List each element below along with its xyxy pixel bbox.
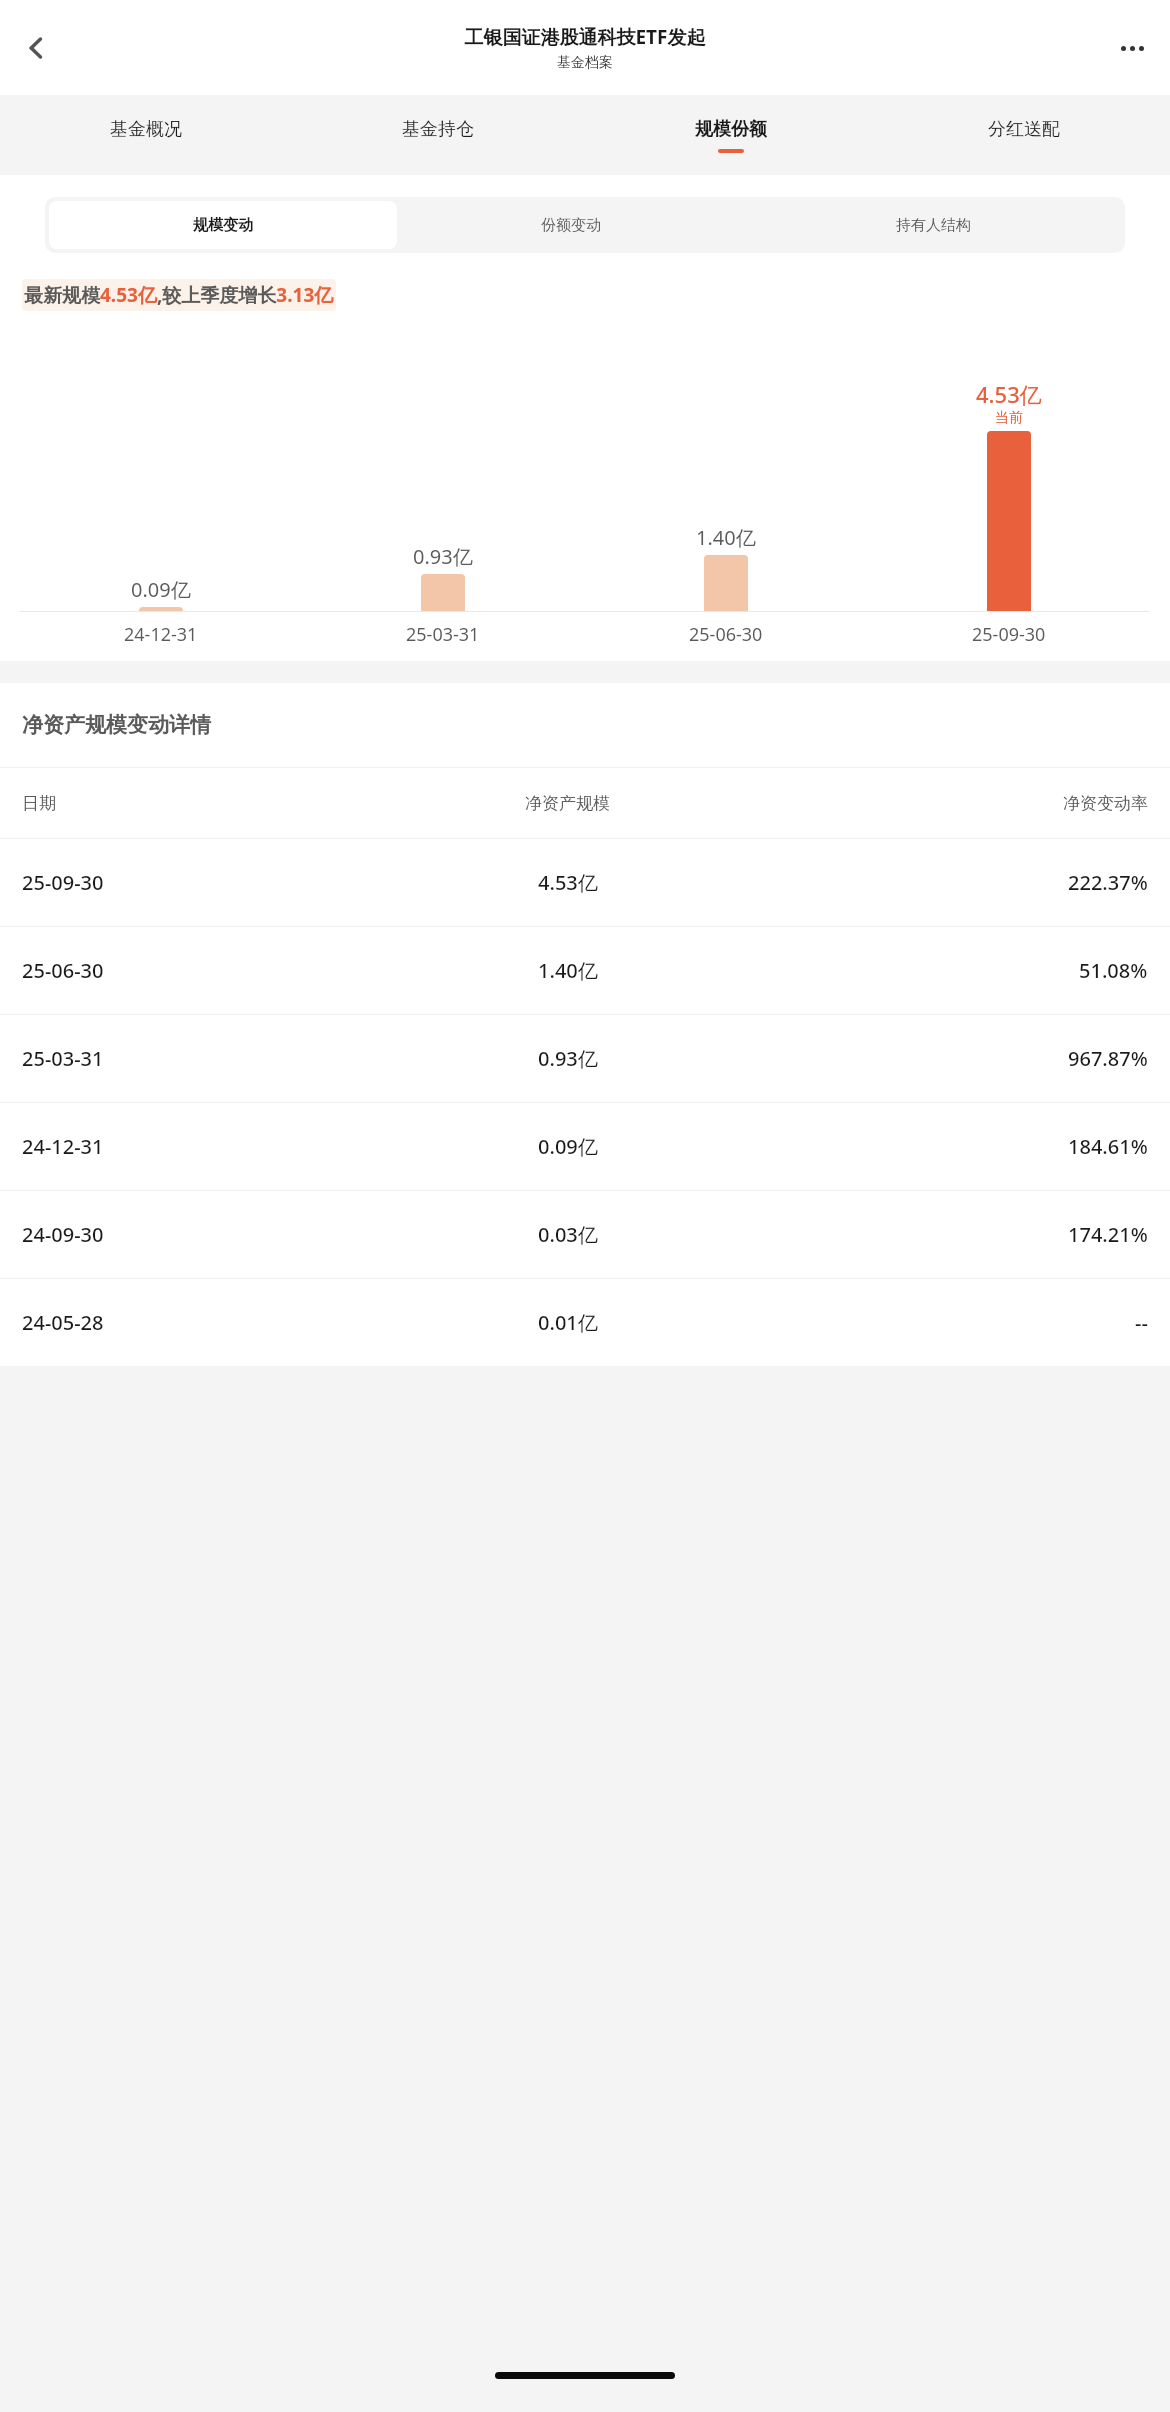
staticText: 持有人结构	[896, 216, 971, 235]
staticText: 25-06-30	[22, 957, 374, 984]
staticText: 0.09亿	[131, 576, 191, 603]
staticText: 规模变动	[193, 216, 253, 235]
staticText: 51.08%	[1079, 957, 1148, 984]
button[interactable]: 份额变动	[397, 201, 745, 249]
staticText: 0.09亿	[538, 1133, 598, 1160]
staticText: 规模份额	[695, 118, 767, 141]
button[interactable]: 规模变动	[49, 201, 397, 249]
button[interactable]: 持有人结构	[745, 201, 1121, 249]
staticText: 25-09-30	[972, 622, 1046, 647]
staticText: --	[1135, 1309, 1148, 1336]
staticText: 工银国证港股通科技ETF发起	[464, 24, 706, 50]
button[interactable]: 24-09-30	[0, 1191, 1170, 1278]
staticText: 24-12-31	[124, 622, 198, 647]
button[interactable]: More options	[1104, 20, 1160, 76]
staticText: 净资产规模	[525, 793, 610, 814]
button[interactable]: 25-09-30	[0, 839, 1170, 926]
staticText: 最新规模4.53亿,较上季度增长3.13亿	[24, 282, 334, 308]
staticText: 0.01亿	[538, 1309, 598, 1336]
staticText: 174.21%	[1068, 1221, 1148, 1248]
staticText: 4.53亿	[538, 869, 598, 896]
staticText: 967.87%	[1068, 1045, 1148, 1072]
button[interactable]: 规模份额	[584, 95, 877, 175]
staticText: 日期	[22, 793, 374, 814]
button[interactable]: 25-06-30	[0, 927, 1170, 1014]
button[interactable]: 24-05-28	[0, 1279, 1170, 1366]
staticText: 4.53亿	[976, 379, 1042, 409]
staticText: 25-06-30	[689, 622, 763, 647]
staticText: 24-09-30	[22, 1221, 374, 1248]
staticText: 基金概况	[110, 118, 182, 141]
staticText: 基金持仓	[402, 118, 474, 141]
staticText: 24-12-31	[22, 1133, 374, 1160]
staticText: 净资产规模变动详情	[22, 712, 211, 738]
staticText: 25-09-30	[22, 869, 374, 896]
staticText: 基金档案	[557, 54, 613, 72]
staticText: 24-05-28	[22, 1309, 374, 1336]
button[interactable]: Back	[8, 20, 64, 76]
staticText: 净资变动率	[1063, 793, 1148, 814]
staticText: 0.03亿	[538, 1221, 598, 1248]
staticText: 184.61%	[1068, 1133, 1148, 1160]
staticText: 分红送配	[988, 118, 1060, 141]
button[interactable]: 分红送配	[877, 95, 1170, 175]
staticText: 0.93亿	[538, 1045, 598, 1072]
staticText: 当前	[995, 409, 1023, 427]
staticText: 25-03-31	[22, 1045, 374, 1072]
staticText: 1.40亿	[538, 957, 598, 984]
staticText: 222.37%	[1068, 869, 1148, 896]
button[interactable]: 基金持仓	[292, 95, 584, 175]
staticText: 1.40亿	[696, 524, 756, 551]
staticText: 25-03-31	[406, 622, 480, 647]
button[interactable]: 基金概况	[0, 95, 292, 175]
button[interactable]: 25-03-31	[0, 1015, 1170, 1102]
staticText: 份额变动	[541, 216, 601, 235]
button[interactable]: 24-12-31	[0, 1103, 1170, 1190]
staticText: 0.93亿	[413, 543, 473, 570]
